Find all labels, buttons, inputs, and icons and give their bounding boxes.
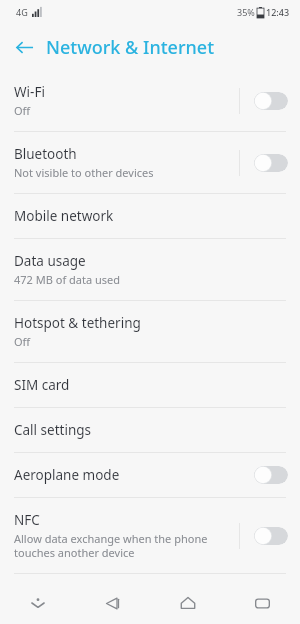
staticText: Off [14, 334, 31, 349]
staticText: Hotspot & tethering [14, 314, 141, 332]
button[interactable]: Recents [225, 582, 300, 624]
button[interactable]: Toggle [254, 466, 288, 484]
button[interactable]: Data usage [0, 239, 300, 301]
button[interactable]: Home [150, 582, 225, 624]
button[interactable]: Wi-Fi [0, 70, 300, 132]
button[interactable]: Back [75, 582, 150, 624]
staticText: 472 MB of data used [14, 272, 120, 287]
staticText: 12:43 [266, 6, 290, 18]
staticText: Allow data exchange when the phone touch… [14, 531, 208, 560]
button[interactable]: Toggle [254, 154, 288, 172]
staticText: Not visible to other devices [14, 165, 154, 180]
staticText: Aeroplane mode [14, 466, 120, 484]
staticText: Call settings [14, 421, 92, 439]
button[interactable]: SIM card [0, 363, 300, 408]
button[interactable]: Aeroplane mode [0, 453, 300, 498]
staticText: Network & Internet [46, 35, 215, 60]
button[interactable]: Mobile network [0, 194, 300, 239]
staticText: Bluetooth [14, 145, 77, 163]
button[interactable]: NFC [0, 498, 300, 574]
staticText: Wi-Fi [14, 83, 45, 101]
staticText: SIM card [14, 376, 70, 394]
staticText: Off [14, 103, 31, 118]
staticText: 4G [16, 6, 28, 18]
button[interactable]: Hotspot & tethering [0, 301, 300, 363]
button[interactable]: Bluetooth [0, 132, 300, 194]
button[interactable]: Toggle [254, 527, 288, 545]
staticText: Mobile network [14, 207, 114, 225]
button[interactable]: Back [6, 29, 42, 65]
button[interactable]: Call settings [0, 408, 300, 453]
staticText: Data usage [14, 252, 86, 270]
button[interactable]: Hide navigation bar [0, 582, 75, 624]
button[interactable]: Toggle [254, 92, 288, 110]
staticText: 35% [237, 6, 255, 18]
staticText: NFC [14, 511, 40, 529]
